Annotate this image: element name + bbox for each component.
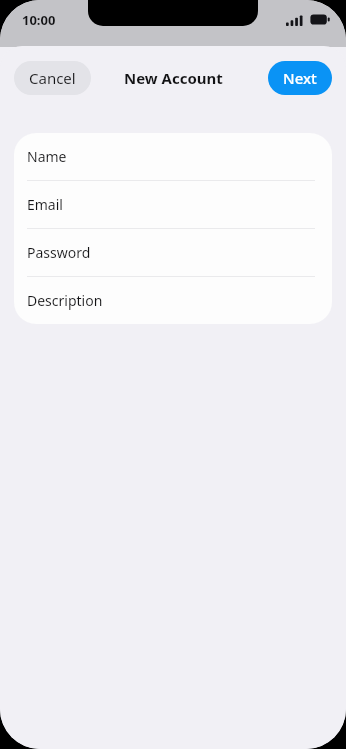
button[interactable]: Next	[268, 61, 332, 95]
staticText: 10:00	[22, 11, 56, 29]
staticText: Cancel	[29, 68, 76, 88]
button[interactable]: Email	[14, 181, 332, 229]
other: Signal and battery status	[286, 13, 330, 26]
staticText: Name	[27, 147, 67, 166]
button[interactable]: Description	[14, 277, 332, 324]
button[interactable]: Password	[14, 229, 332, 277]
staticText: Password	[27, 243, 91, 262]
button[interactable]: Name	[14, 133, 332, 181]
staticText: Description	[27, 291, 103, 310]
staticText: Next	[283, 68, 317, 88]
button[interactable]: Cancel	[14, 61, 91, 95]
staticText: Email	[27, 195, 63, 214]
staticText: New Account	[124, 68, 223, 88]
